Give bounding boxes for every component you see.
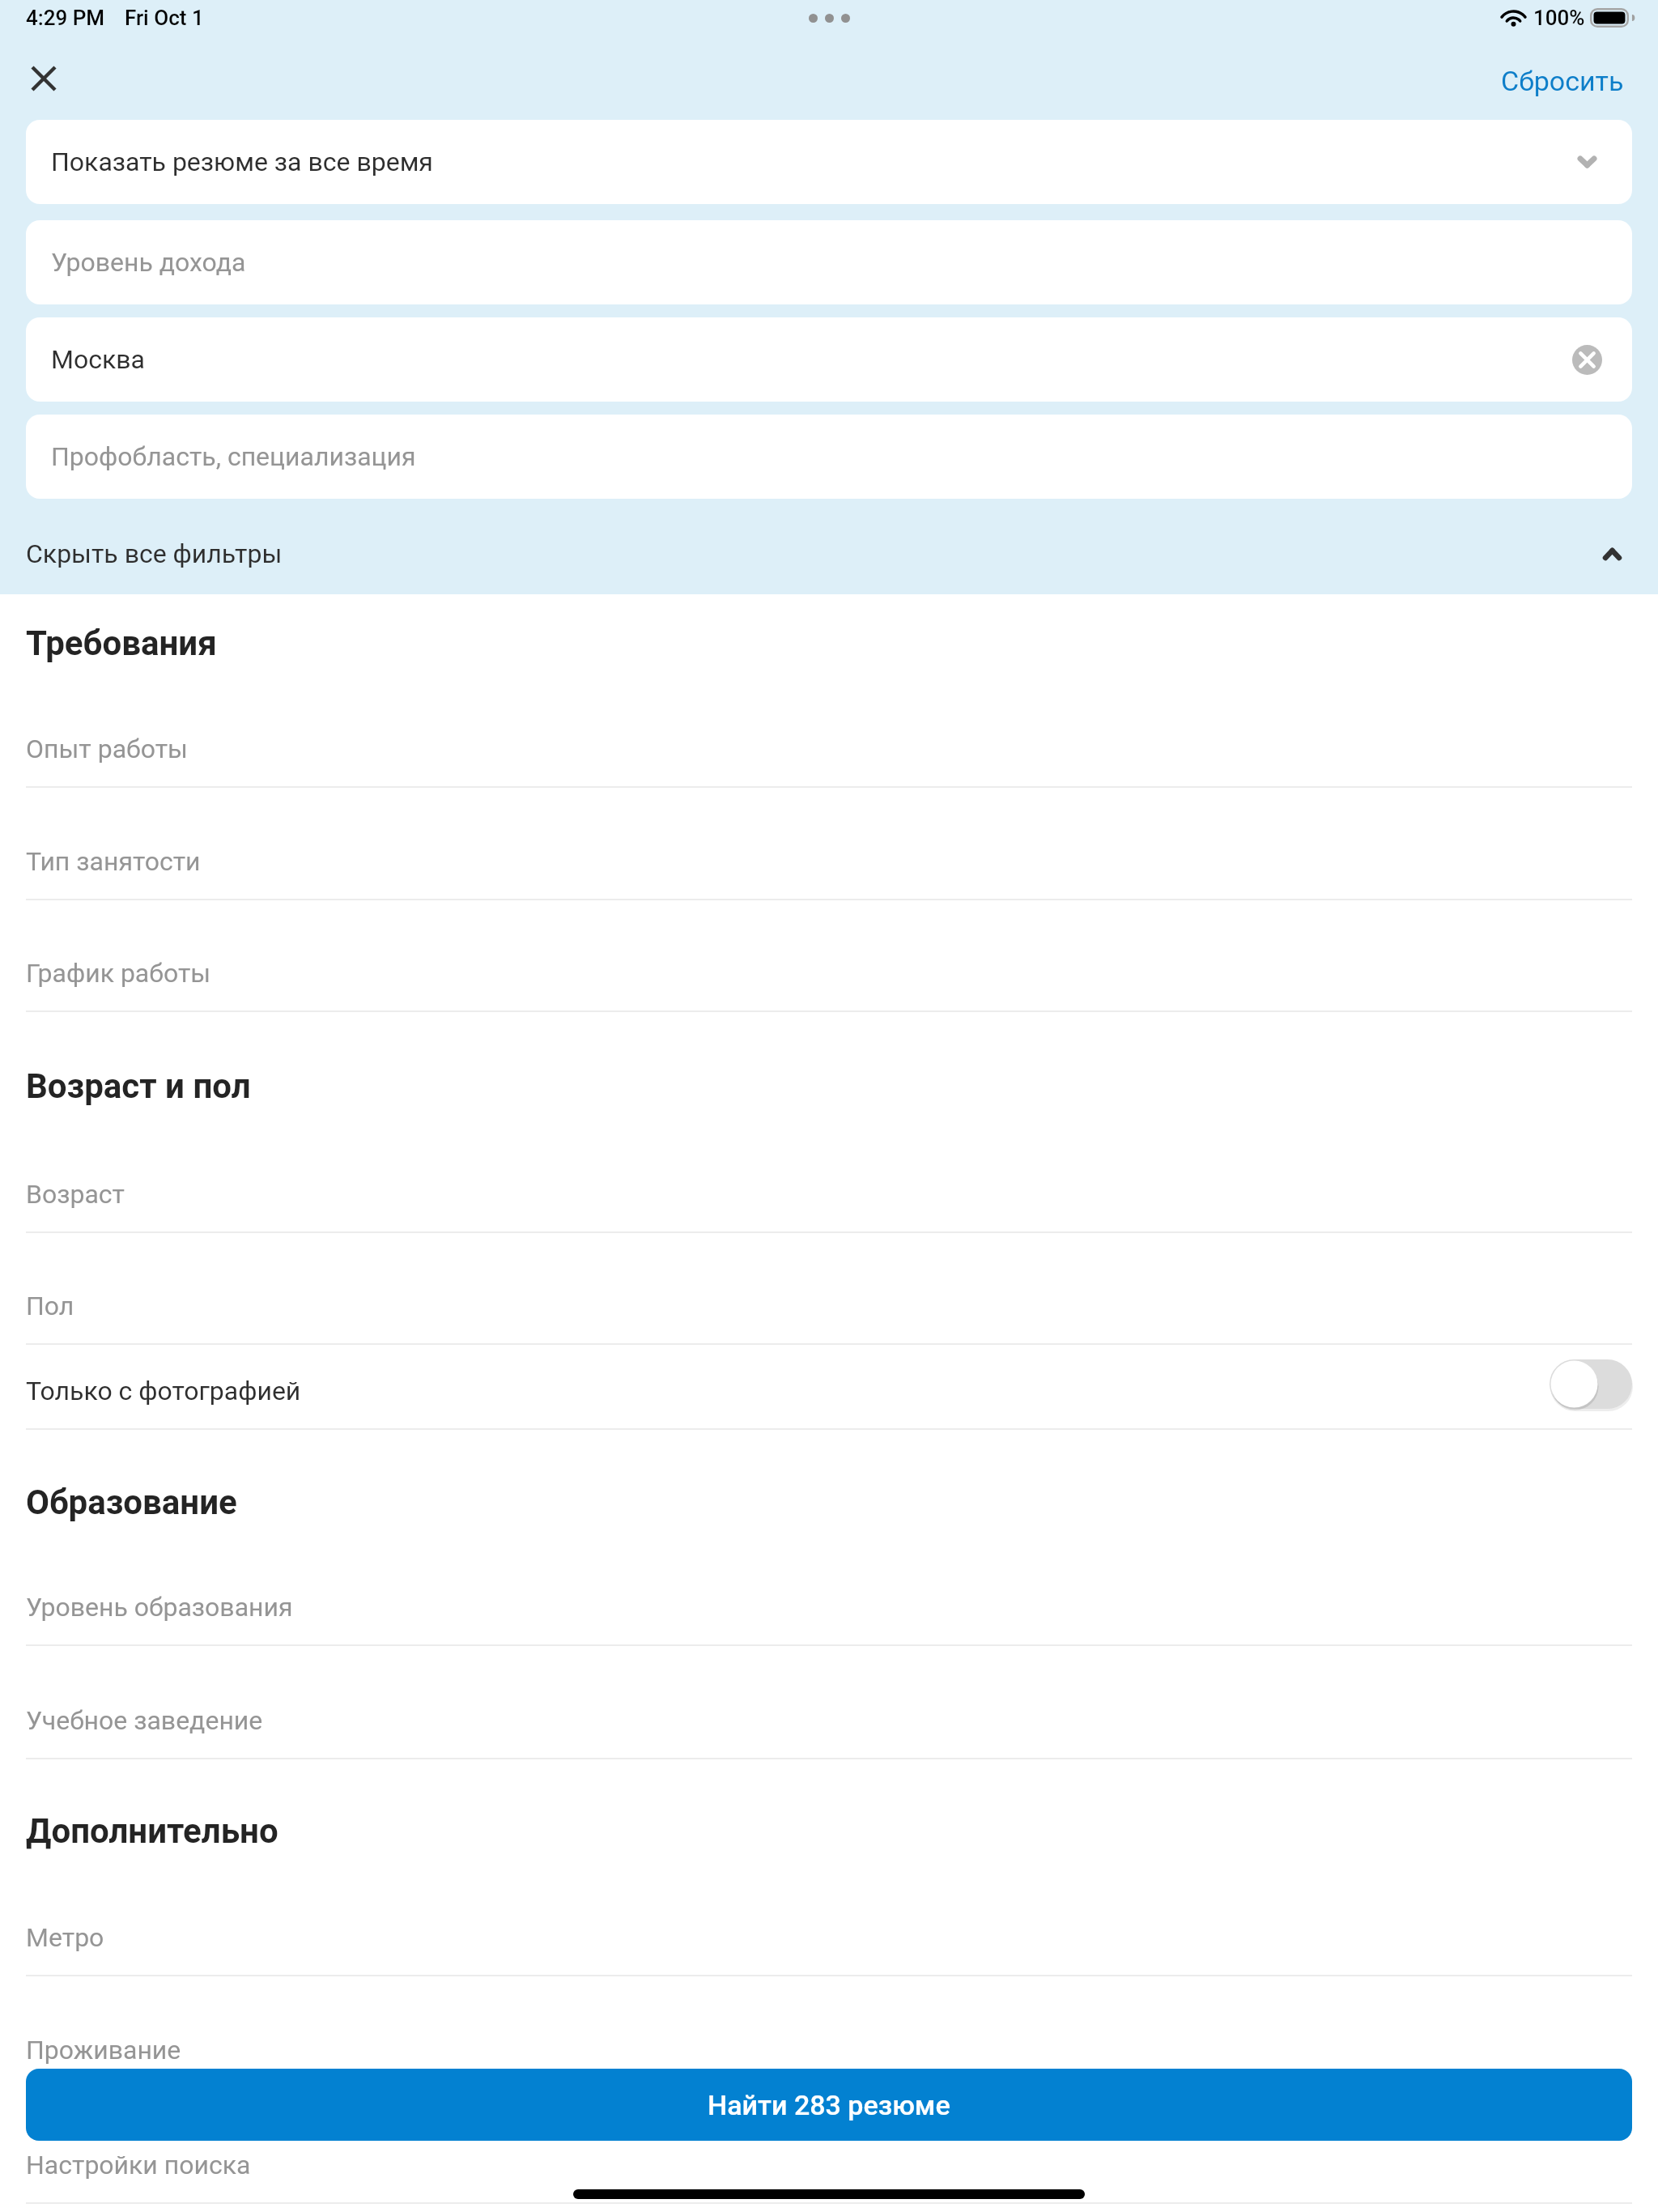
button[interactable]: Проживание bbox=[0, 2009, 1658, 2089]
button[interactable]: График работы bbox=[0, 932, 1658, 1012]
button[interactable]: Метро bbox=[0, 1896, 1658, 1976]
button[interactable]: Учебное заведение bbox=[0, 1679, 1658, 1759]
staticText: График работы bbox=[26, 958, 211, 989]
button[interactable]: Пол bbox=[0, 1265, 1658, 1345]
staticText: Дополнительно bbox=[26, 1811, 278, 1851]
button[interactable]: Показать резюме за все время bbox=[26, 120, 1632, 204]
staticText: 4:29 PM bbox=[26, 6, 105, 30]
button[interactable]: Close bbox=[10, 45, 78, 113]
staticText: Возраст bbox=[26, 1179, 125, 1210]
staticText: Образование bbox=[26, 1482, 237, 1522]
button[interactable]: Москва bbox=[26, 317, 1632, 402]
button[interactable]: Только с фотографией bbox=[0, 1350, 1658, 1430]
button[interactable]: Тип занятости bbox=[0, 820, 1658, 900]
staticText: Уровень дохода bbox=[51, 247, 246, 278]
staticText: Сбросить bbox=[1501, 65, 1624, 97]
button[interactable]: Возраст bbox=[0, 1153, 1658, 1233]
button[interactable]: Настройки поиска bbox=[0, 2124, 1658, 2204]
staticText: Возраст и пол bbox=[26, 1066, 251, 1106]
staticText: Профобласть, специализация bbox=[51, 441, 416, 472]
staticText: Москва bbox=[51, 344, 145, 375]
staticText: Метро bbox=[26, 1922, 104, 1953]
staticText: Учебное заведение bbox=[26, 1705, 263, 1736]
button[interactable]: Clear city bbox=[1571, 344, 1602, 375]
staticText: Показать резюме за все время bbox=[51, 147, 433, 177]
staticText: Только с фотографией bbox=[26, 1376, 301, 1406]
staticText: Требования bbox=[26, 623, 217, 663]
button[interactable]: Уровень образования bbox=[0, 1566, 1658, 1646]
button[interactable]: Скрыть все фильтры bbox=[0, 516, 1658, 592]
staticText: Найти 283 резюме bbox=[708, 2089, 950, 2121]
staticText: Скрыть все фильтры bbox=[26, 538, 283, 569]
staticText: Уровень образования bbox=[26, 1592, 293, 1623]
button[interactable]: Опыт работы bbox=[0, 708, 1658, 788]
staticText: Проживание bbox=[26, 2035, 181, 2065]
staticText: Тип занятости bbox=[26, 846, 201, 877]
staticText: 100% bbox=[1533, 6, 1585, 30]
staticText: Настройки поиска bbox=[26, 2150, 251, 2180]
button[interactable]: Уровень дохода bbox=[26, 220, 1632, 304]
staticText: Опыт работы bbox=[26, 734, 188, 764]
button[interactable]: Сбросить bbox=[1467, 49, 1658, 110]
staticText: Пол bbox=[26, 1291, 74, 1321]
button[interactable]: Профобласть, специализация bbox=[26, 415, 1632, 499]
button[interactable]: Найти 283 резюме bbox=[26, 2069, 1632, 2141]
staticText: Fri Oct 1 bbox=[125, 6, 204, 30]
